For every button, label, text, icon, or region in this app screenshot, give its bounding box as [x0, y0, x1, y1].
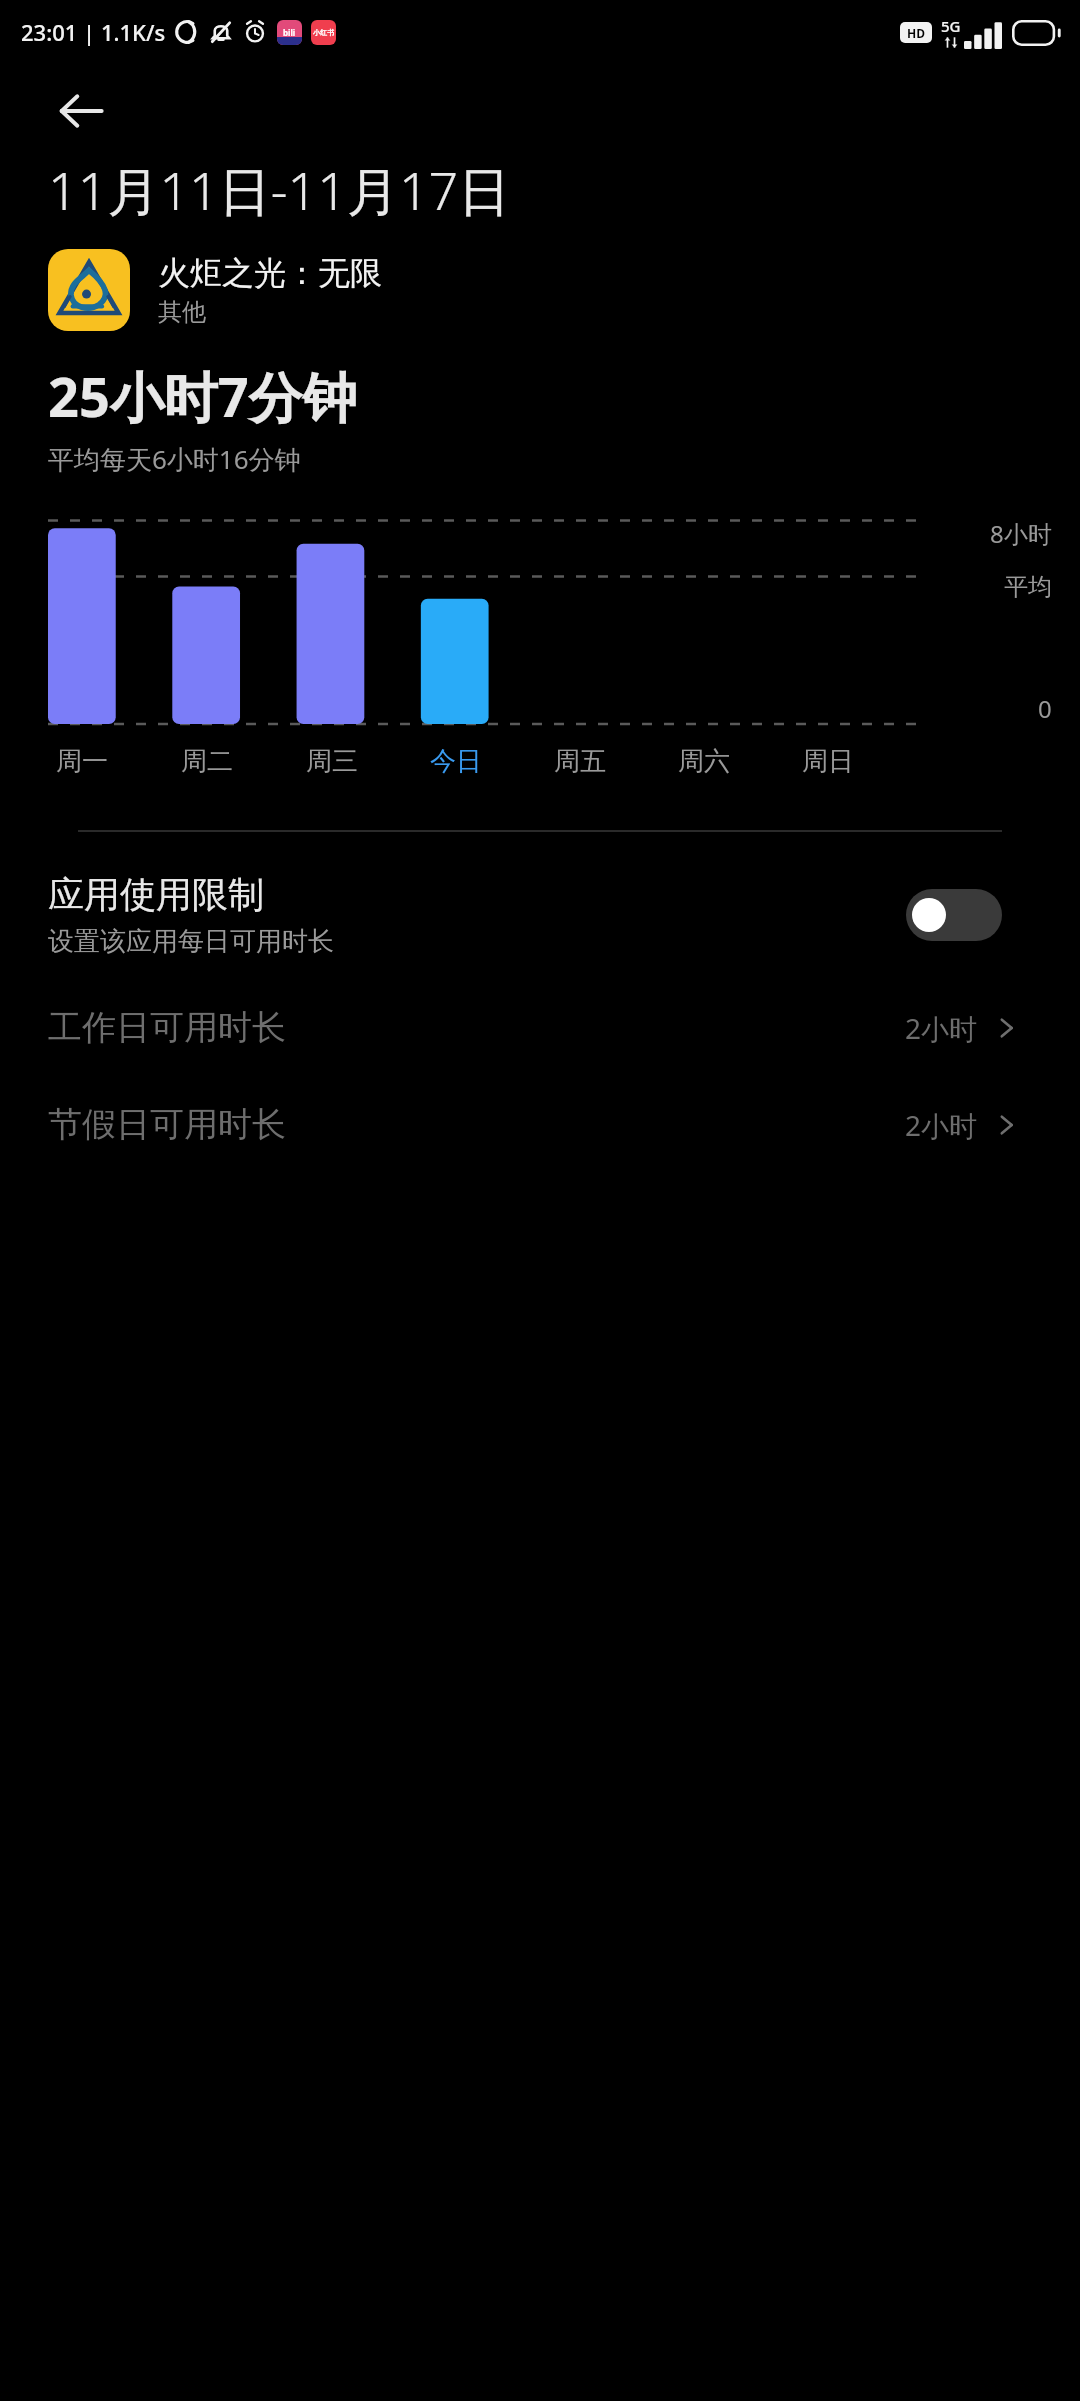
staticText: 平均每天6小时16分钟 — [48, 441, 301, 477]
staticText: 23:01 | 1.1K/s — [21, 17, 166, 47]
staticText: 周六 — [678, 745, 730, 778]
staticText: 工作日可用时长 — [48, 1006, 286, 1049]
button[interactable]: Back — [52, 82, 110, 140]
staticText: 周五 — [554, 745, 606, 778]
staticText: 周二 — [181, 745, 233, 778]
staticText: 周三 — [306, 745, 358, 778]
staticText: 2小时 — [905, 1106, 978, 1144]
staticText: 小红书 — [313, 28, 334, 37]
staticText: 25小时7分钟 — [48, 359, 357, 433]
staticText: 今日 — [430, 745, 482, 778]
button[interactable]: 应用使用限制 — [0, 864, 1080, 966]
staticText: 火炬之光：无限 — [158, 253, 382, 293]
staticText: 设置该应用每日可用时长 — [48, 925, 334, 958]
button[interactable]: 火炬之光：无限 — [48, 249, 1080, 331]
staticText: 11月11日-11月17日 — [48, 154, 511, 225]
staticText: 5G — [941, 16, 961, 36]
staticText: 周日 — [802, 745, 854, 778]
staticText: 0 — [1038, 692, 1052, 725]
staticText: 应用使用限制 — [48, 872, 264, 917]
button[interactable]: 节假日可用时长 — [0, 1089, 1080, 1160]
button[interactable]: 工作日可用时长 — [0, 992, 1080, 1063]
staticText: 周一 — [56, 745, 108, 778]
staticText: 2小时 — [905, 1009, 978, 1047]
staticText: 节假日可用时长 — [48, 1103, 286, 1146]
staticText: 其他 — [158, 297, 206, 327]
staticText: bili — [283, 27, 296, 38]
staticText: 平均 — [1004, 572, 1052, 602]
button[interactable]: 应用使用限制 开关 — [906, 889, 1002, 941]
staticText: HD — [907, 25, 925, 41]
staticText: 8小时 — [990, 517, 1052, 550]
